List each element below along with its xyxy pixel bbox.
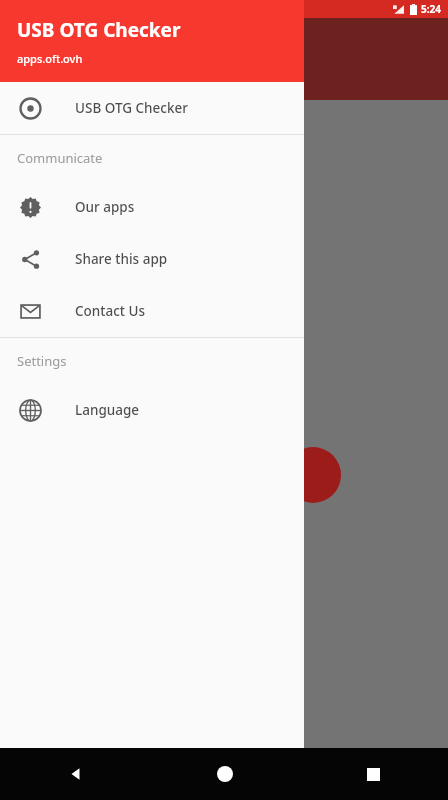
staticText: 5:24 (421, 2, 441, 16)
staticText: Contact Us (75, 302, 146, 320)
button[interactable]: USB OTG Checker (0, 0, 304, 82)
button[interactable]: Language (0, 384, 304, 436)
button[interactable]: Check USB OTG (285, 447, 341, 503)
button[interactable]: Our apps (0, 181, 304, 233)
button[interactable]: Home (150, 748, 299, 800)
staticText: apps.oft.ovh (17, 51, 83, 66)
button[interactable]: Contact Us (0, 285, 304, 337)
button[interactable]: Back (0, 748, 150, 800)
staticText: USB OTG Checker (75, 99, 188, 117)
button[interactable]: Share this app (0, 233, 304, 285)
staticText: Settings (17, 352, 67, 370)
staticText: Share this app (75, 250, 168, 268)
button[interactable]: Recent apps (299, 748, 448, 800)
staticText: Our apps (75, 198, 135, 216)
staticText: Language (75, 401, 140, 419)
staticText: Communicate (17, 149, 103, 167)
button[interactable]: USB OTG Checker (0, 82, 304, 134)
staticText: USB OTG Checker (17, 17, 181, 43)
